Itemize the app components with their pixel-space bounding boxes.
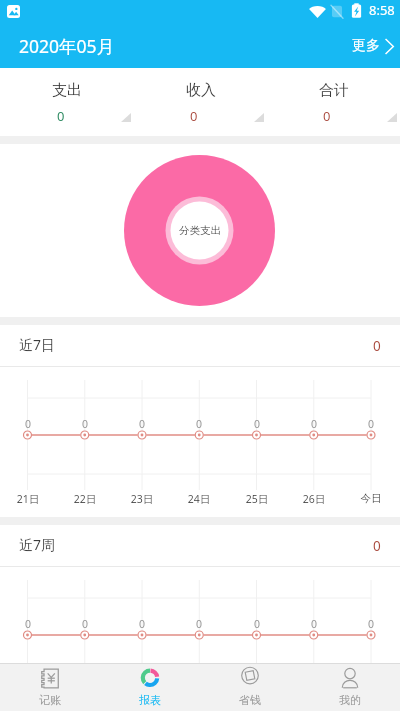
staticText: 0 <box>357 617 385 631</box>
staticText: 0 <box>243 417 271 431</box>
staticText: 0 <box>243 617 271 631</box>
staticText: 25日 <box>239 492 275 506</box>
staticText: 0 <box>357 417 385 431</box>
staticText: 0 <box>190 107 198 125</box>
staticText: 报表 <box>139 693 161 707</box>
staticText: 21日 <box>10 492 46 506</box>
staticText: 合计 <box>319 81 349 100</box>
button[interactable]: 合计 <box>267 68 400 136</box>
staticText: 今日 <box>353 492 389 505</box>
button[interactable]: 近7日 <box>0 325 400 366</box>
staticText: 0 <box>300 617 328 631</box>
staticText: 26日 <box>296 492 332 506</box>
button[interactable]: 近7周 <box>0 525 400 566</box>
staticText: 0 <box>185 417 213 431</box>
staticText: 0 <box>57 107 65 125</box>
staticText: 0 <box>373 537 381 555</box>
staticText: 0 <box>373 337 381 355</box>
staticText: 更多 <box>352 37 380 55</box>
staticText: 0 <box>185 617 213 631</box>
staticText: 记账 <box>39 693 61 707</box>
button[interactable]: 报表 <box>100 664 200 711</box>
staticText: 收入 <box>186 81 216 100</box>
staticText: 0 <box>300 417 328 431</box>
staticText: 0 <box>128 417 156 431</box>
staticText: 8:58 <box>369 1 395 19</box>
staticText: 支出 <box>52 81 82 100</box>
staticText: 22日 <box>67 492 103 506</box>
button[interactable]: 分类支出 <box>124 155 275 306</box>
button[interactable]: 支出 <box>0 68 134 136</box>
button[interactable]: 收入 <box>134 68 267 136</box>
button[interactable]: 我的 <box>300 664 400 711</box>
staticText: 我的 <box>339 693 361 707</box>
staticText: 近7周 <box>19 535 56 554</box>
staticText: 0 <box>128 617 156 631</box>
staticText: 0 <box>14 617 42 631</box>
staticText: 0 <box>14 417 42 431</box>
staticText: 2020年05月 <box>19 34 115 58</box>
button[interactable]: 省钱 <box>200 664 300 711</box>
staticText: 0 <box>71 417 99 431</box>
button[interactable]: 更多 <box>336 24 400 68</box>
staticText: 0 <box>323 107 331 125</box>
staticText: 23日 <box>124 492 160 506</box>
staticText: 0 <box>71 617 99 631</box>
staticText: 省钱 <box>239 693 261 707</box>
button[interactable]: 记账 <box>0 664 100 711</box>
staticText: 24日 <box>181 492 217 506</box>
staticText: 分类支出 <box>179 224 221 237</box>
staticText: 近7日 <box>19 335 56 354</box>
